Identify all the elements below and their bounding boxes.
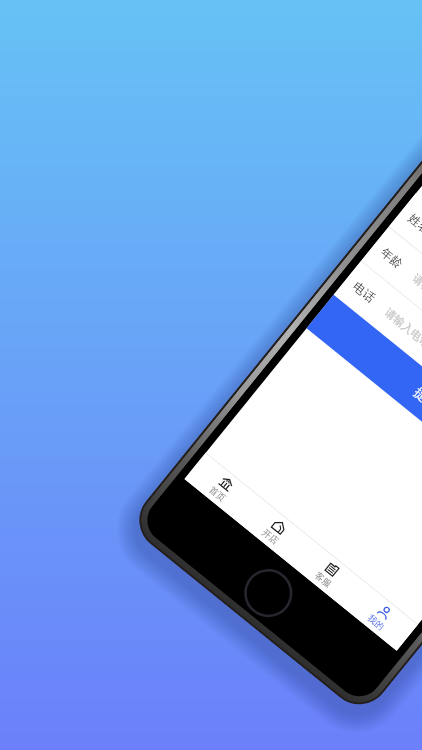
other: 我的 — [376, 603, 394, 621]
button[interactable]: 提交 — [307, 295, 422, 500]
staticText: 提交 — [411, 384, 422, 412]
other: 开店 — [270, 517, 288, 536]
other: 客服 — [323, 560, 341, 578]
staticText: 开店 — [260, 526, 281, 546]
staticText: 请输入年龄 — [410, 271, 422, 316]
staticText: 年龄 — [378, 244, 406, 271]
other: 首页 — [217, 475, 235, 493]
button[interactable]: 年龄 — [361, 227, 422, 432]
staticText: 请输入电话 — [382, 305, 422, 351]
staticText: 电话 — [350, 278, 378, 305]
button[interactable]: 姓名 — [389, 193, 422, 398]
button[interactable]: 开店 — [238, 497, 312, 565]
button[interactable]: 客服 — [291, 539, 365, 608]
staticText: 姓名 — [406, 210, 422, 237]
staticText: 首页 — [207, 484, 228, 503]
button[interactable]: 首页 — [184, 453, 259, 522]
staticText: 客服 — [313, 569, 334, 589]
staticText: 我的 — [366, 612, 387, 632]
button[interactable]: 我的 — [344, 582, 417, 651]
button[interactable]: 电话 — [334, 261, 422, 466]
